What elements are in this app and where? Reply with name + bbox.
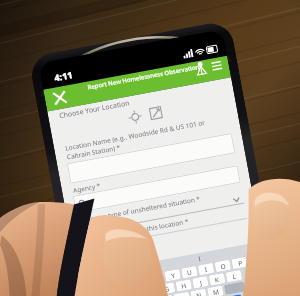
staticText: Y <box>170 271 176 280</box>
button[interactable] <box>67 133 235 183</box>
staticText: I <box>198 255 202 263</box>
button[interactable]: H <box>175 279 192 292</box>
button[interactable]: U <box>181 266 198 278</box>
button[interactable]: T <box>148 272 164 285</box>
button[interactable]: Use my location <box>128 109 143 125</box>
staticText: Location Name (e.g., Woodside Rd & US 10… <box>64 118 206 153</box>
staticText: G <box>164 284 170 294</box>
staticText: 4:11 <box>53 68 74 83</box>
button[interactable]: Backspace <box>224 281 245 295</box>
button[interactable] <box>73 166 240 213</box>
button[interactable]: Close <box>51 88 69 107</box>
button[interactable]: Y <box>164 269 181 282</box>
staticText: Number of people at this location * <box>82 217 189 245</box>
button[interactable]: Draw on map <box>148 106 163 121</box>
staticText: O <box>220 261 227 271</box>
button[interactable]: P <box>231 257 248 269</box>
staticText: Choose Your Location <box>58 98 131 121</box>
button[interactable]: V <box>157 295 174 296</box>
button[interactable]: K <box>209 273 225 286</box>
button[interactable]: R <box>131 275 148 288</box>
button[interactable]: B <box>174 292 190 296</box>
staticText: M <box>212 287 220 296</box>
staticText: P <box>237 258 243 268</box>
button[interactable]: G <box>159 282 175 295</box>
staticText: Agency * <box>72 181 101 195</box>
staticText: U <box>186 268 193 278</box>
staticText: L <box>232 272 237 281</box>
staticText: I <box>204 265 208 274</box>
staticText: Choose a type of unsheltered situation * <box>78 194 201 225</box>
staticText: H <box>181 281 187 291</box>
button[interactable]: O <box>215 260 231 272</box>
staticText: K <box>214 275 221 285</box>
staticText: Report New Homelessness Observation <box>87 63 200 91</box>
button[interactable]: Enter <box>214 294 243 296</box>
button[interactable]: M <box>207 285 224 296</box>
button[interactable]: I <box>198 263 214 275</box>
button[interactable]: L <box>226 270 242 282</box>
button[interactable]: Add observation <box>193 60 209 77</box>
staticText: Caltrain Station) * <box>66 143 122 161</box>
button[interactable]: N <box>190 289 207 296</box>
button[interactable]: J <box>192 276 209 289</box>
button[interactable]: Menu <box>209 58 225 74</box>
button[interactable] <box>79 195 244 234</box>
staticText: N <box>195 290 202 296</box>
staticText: J <box>199 278 203 287</box>
